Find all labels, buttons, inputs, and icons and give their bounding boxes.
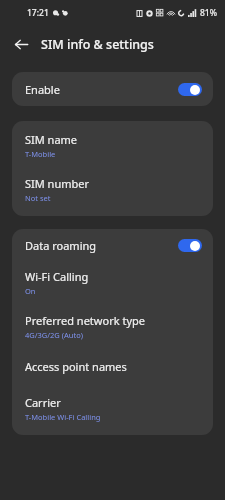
- staticText: Preferred network type: [25, 313, 145, 328]
- staticText: Access point names: [25, 359, 127, 374]
- staticText: Enable: [25, 82, 178, 97]
- button[interactable]: Enable SIM: [178, 83, 202, 96]
- button[interactable]: Data roaming: [178, 239, 202, 252]
- button[interactable]: SIM number: [12, 174, 213, 205]
- staticText: T-Mobile: [25, 149, 56, 159]
- staticText: Data roaming: [25, 238, 97, 253]
- button[interactable]: Preferred network type: [12, 311, 213, 342]
- button[interactable]: Data roaming: [12, 236, 213, 255]
- button[interactable]: Enable: [12, 72, 213, 106]
- staticText: 4G/3G/2G (Auto): [25, 330, 83, 340]
- staticText: Carrier: [25, 395, 61, 410]
- staticText: SIM number: [25, 176, 89, 191]
- staticText: SIM name: [25, 132, 78, 147]
- staticText: SIM info & settings: [41, 36, 154, 53]
- button[interactable]: Back: [8, 31, 34, 57]
- button[interactable]: Carrier: [12, 393, 213, 424]
- button[interactable]: Access point names: [12, 357, 213, 376]
- button[interactable]: SIM name: [12, 130, 213, 161]
- staticText: 81%: [200, 7, 217, 19]
- staticText: 17:21: [27, 7, 49, 19]
- staticText: Wi-Fi Calling: [25, 269, 89, 284]
- staticText: On: [25, 286, 36, 296]
- button[interactable]: Wi-Fi Calling: [12, 267, 213, 298]
- staticText: T-Mobile Wi-Fi Calling: [25, 412, 101, 422]
- staticText: Not set: [25, 193, 51, 203]
